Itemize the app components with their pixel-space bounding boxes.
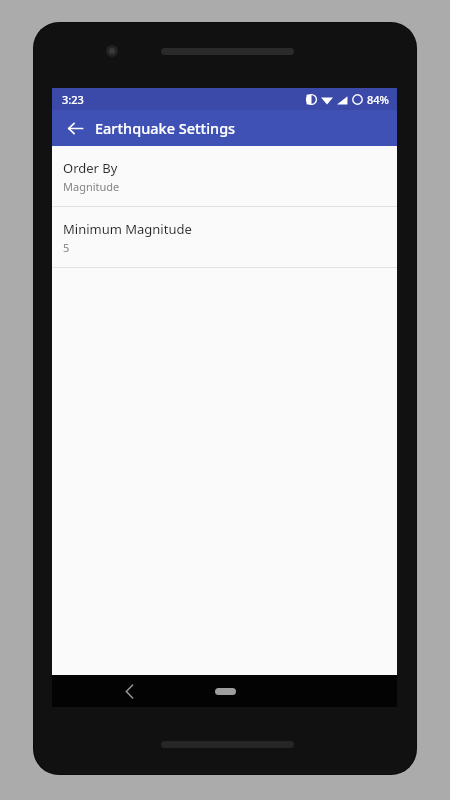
staticText: Earthquake Settings bbox=[95, 118, 236, 138]
button[interactable]: Home bbox=[208, 682, 242, 700]
staticText: Minimum Magnitude bbox=[63, 220, 192, 238]
staticText: Order By bbox=[63, 159, 118, 177]
button[interactable]: Back bbox=[116, 678, 142, 704]
staticText: 5 bbox=[63, 240, 70, 255]
button[interactable]: Order By bbox=[52, 146, 397, 206]
button[interactable]: Navigate up bbox=[60, 113, 90, 143]
button[interactable]: Minimum Magnitude bbox=[52, 207, 397, 267]
staticText: 3:23 bbox=[62, 92, 84, 107]
staticText: 84% bbox=[367, 92, 389, 107]
staticText: Magnitude bbox=[63, 179, 120, 194]
